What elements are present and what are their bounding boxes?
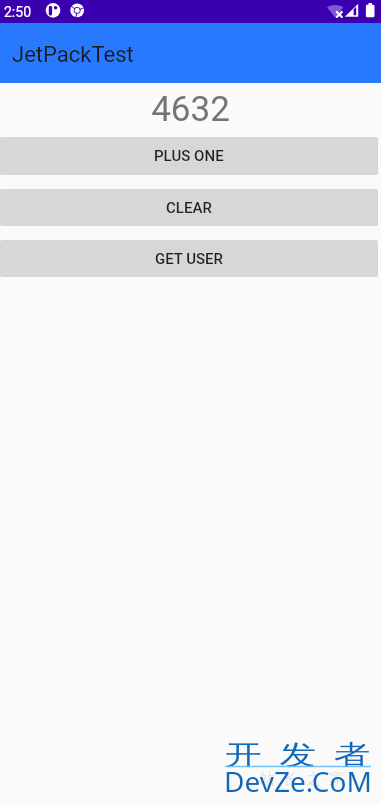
button[interactable]: CLEAR [0, 189, 378, 226]
staticText: PLUS ONE [154, 147, 224, 165]
staticText: 4632 [151, 89, 230, 130]
staticText: 开 发 者 [225, 735, 376, 772]
staticText: 站长之家 [256, 770, 348, 789]
button[interactable]: GET USER [0, 240, 378, 277]
staticText: 2:50 [4, 4, 31, 20]
staticText: DevZe.CoM [224, 762, 372, 800]
button[interactable]: PLUS ONE [0, 137, 378, 175]
staticText: JetPackTest [12, 42, 134, 68]
staticText: CLEAR [166, 199, 212, 217]
staticText: GET USER [155, 250, 223, 268]
